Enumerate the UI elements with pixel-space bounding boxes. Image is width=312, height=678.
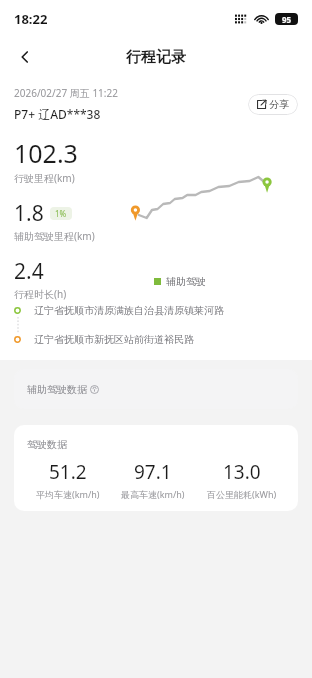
staticText: 2026/02/27 周五 11:22 <box>14 86 118 100</box>
staticText: 驾驶数据 <box>27 438 67 451</box>
staticText: 51.2 <box>49 459 87 485</box>
staticText: 行驶里程(km) <box>14 171 75 185</box>
staticText: 18:22 <box>14 10 48 28</box>
button[interactable]: 辅助驾驶数据 <box>14 369 298 409</box>
staticText: 行程记录 <box>126 48 186 67</box>
staticText: P7+ 辽AD***38 <box>14 106 101 122</box>
staticText: 102.3 <box>14 136 78 170</box>
staticText: 97.1 <box>134 459 172 485</box>
staticText: 平均车速(km/h) <box>36 488 100 500</box>
staticText: 辽宁省抚顺市新抚区站前街道裕民路 <box>34 333 194 346</box>
staticText: 2.4 <box>14 257 44 286</box>
staticText: 最高车速(km/h) <box>121 488 185 500</box>
button[interactable]: Back <box>8 40 42 74</box>
staticText: 分享 <box>269 98 289 111</box>
staticText: 辅助驾驶 <box>166 275 206 288</box>
button[interactable]: 分享 <box>248 94 298 115</box>
staticText: 百公里能耗(kWh) <box>207 488 277 500</box>
staticText: 95 <box>282 14 292 25</box>
staticText: 13.0 <box>223 459 261 485</box>
staticText: 1% <box>55 208 67 219</box>
staticText: 1.8 <box>14 199 44 228</box>
staticText: 辅助驾驶数据 <box>27 383 87 396</box>
staticText: 行程时长(h) <box>14 287 67 301</box>
staticText: 辽宁省抚顺市清原满族自治县清原镇莱河路 <box>34 304 224 317</box>
staticText: 辅助驾驶里程(km) <box>14 229 95 243</box>
